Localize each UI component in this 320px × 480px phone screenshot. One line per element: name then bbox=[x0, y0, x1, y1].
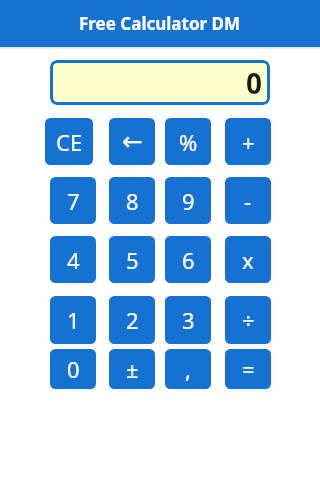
staticText: 0 bbox=[67, 354, 80, 384]
button[interactable]: 9 bbox=[165, 177, 211, 224]
staticText: - bbox=[244, 186, 252, 216]
button[interactable]: + bbox=[225, 118, 271, 165]
staticText: 4 bbox=[67, 245, 80, 275]
button[interactable]: ± bbox=[109, 349, 155, 389]
staticText: ÷ bbox=[242, 305, 255, 335]
staticText: % bbox=[179, 127, 198, 157]
staticText: 9 bbox=[182, 186, 195, 216]
staticText: 7 bbox=[67, 186, 80, 216]
button[interactable]: 5 bbox=[109, 236, 155, 283]
staticText: 0 bbox=[246, 64, 263, 102]
staticText: ← bbox=[122, 127, 143, 156]
staticText: 8 bbox=[126, 186, 139, 216]
button[interactable]: 0 bbox=[50, 60, 270, 105]
staticText: 1 bbox=[67, 305, 80, 335]
button[interactable]: , bbox=[165, 349, 211, 389]
button[interactable]: 3 bbox=[165, 296, 211, 344]
button[interactable]: ÷ bbox=[225, 296, 271, 344]
staticText: 3 bbox=[182, 305, 195, 335]
button[interactable]: 0 bbox=[50, 349, 96, 389]
staticText: , bbox=[185, 354, 191, 384]
staticText: + bbox=[242, 127, 255, 157]
button[interactable]: 8 bbox=[109, 177, 155, 224]
button[interactable]: CE bbox=[45, 118, 93, 165]
staticText: CE bbox=[56, 127, 83, 157]
button[interactable]: 1 bbox=[50, 296, 96, 344]
button[interactable]: 7 bbox=[50, 177, 96, 224]
staticText: Free Calculator DM bbox=[79, 12, 241, 35]
staticText: x bbox=[242, 245, 254, 275]
button[interactable]: % bbox=[165, 118, 211, 165]
button[interactable]: ← bbox=[109, 118, 155, 165]
button[interactable]: 6 bbox=[165, 236, 211, 283]
button[interactable]: 2 bbox=[109, 296, 155, 344]
staticText: ± bbox=[126, 354, 139, 384]
staticText: 6 bbox=[182, 245, 195, 275]
button[interactable]: 4 bbox=[50, 236, 96, 283]
staticText: 2 bbox=[126, 305, 139, 335]
button[interactable]: = bbox=[225, 349, 271, 389]
button[interactable]: - bbox=[225, 177, 271, 224]
staticText: = bbox=[242, 354, 255, 384]
button[interactable]: x bbox=[225, 236, 271, 283]
staticText: 5 bbox=[126, 245, 139, 275]
